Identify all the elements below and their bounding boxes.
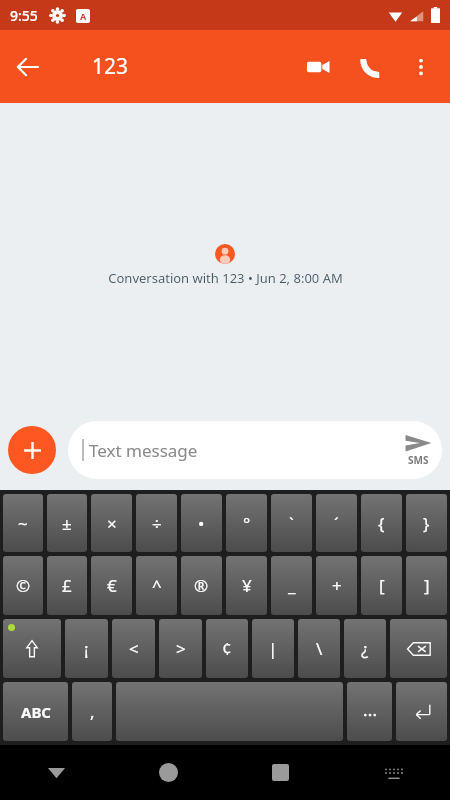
button[interactable]: ] [406, 556, 447, 615]
button[interactable]: , [72, 682, 112, 741]
staticText: ¢ [222, 637, 232, 660]
button[interactable]: Home [112, 745, 224, 800]
button[interactable]: Call [344, 41, 396, 93]
button[interactable]: Shift [3, 619, 61, 678]
button[interactable]: ¿ [344, 619, 386, 678]
button[interactable]: ^ [136, 556, 177, 615]
button[interactable]: Recents [224, 745, 337, 800]
staticText: ABC [21, 702, 51, 722]
staticText: © [16, 574, 31, 597]
staticText: ` [289, 512, 294, 535]
staticText: × [107, 512, 117, 535]
staticText: ´ [334, 512, 339, 535]
button[interactable]: _ [271, 556, 312, 615]
staticText: £ [62, 574, 72, 597]
staticText: > [176, 637, 186, 660]
staticText: • [198, 512, 205, 535]
staticText: ¥ [242, 574, 252, 597]
staticText: { [378, 512, 385, 535]
staticText: ] [424, 574, 430, 597]
button[interactable]: Enter [396, 682, 447, 741]
button[interactable]: × [91, 494, 132, 552]
button[interactable]: < [112, 619, 155, 678]
staticText: 9:55 [10, 6, 38, 25]
button[interactable]: | [252, 619, 294, 678]
staticText: < [129, 637, 139, 660]
button[interactable]: Text message [68, 421, 442, 479]
button[interactable]: Back [0, 39, 56, 95]
staticText: \ [316, 637, 323, 660]
button[interactable]: More options [396, 42, 446, 92]
staticText: [ [379, 574, 385, 597]
button[interactable]: £ [47, 556, 87, 615]
button[interactable]: ` [271, 494, 312, 552]
button[interactable]: \ [298, 619, 340, 678]
button[interactable]: ± [47, 494, 87, 552]
staticText: ¡ [84, 637, 89, 660]
button[interactable]: ° [226, 494, 267, 552]
button[interactable]: { [361, 494, 402, 552]
staticText: 123 [92, 52, 129, 81]
button[interactable]: Space [116, 682, 343, 741]
staticText: + [332, 574, 342, 597]
button[interactable]: Backspace [390, 619, 447, 678]
staticText: ~ [18, 512, 28, 535]
button[interactable]: } [406, 494, 447, 552]
staticText: } [423, 512, 430, 535]
button[interactable]: ´ [316, 494, 357, 552]
staticText: Conversation with 123 • Jun 2, 8:00 AM [108, 269, 343, 287]
staticText: Text message [89, 439, 198, 462]
button[interactable]: ÷ [136, 494, 177, 552]
staticText: , [90, 700, 95, 723]
button[interactable]: • [181, 494, 222, 552]
staticText: ÷ [152, 512, 162, 535]
staticText: ^ [152, 574, 162, 597]
staticText: ¿ [361, 637, 369, 660]
staticText: ± [62, 512, 72, 535]
staticText: € [107, 574, 117, 597]
button[interactable]: + [316, 556, 357, 615]
button[interactable]: ¡ [65, 619, 108, 678]
button[interactable]: © [3, 556, 43, 615]
staticText: | [268, 637, 278, 660]
button[interactable]: [ [361, 556, 402, 615]
button[interactable]: € [91, 556, 132, 615]
button[interactable]: ABC [3, 682, 68, 741]
staticText: A [80, 10, 87, 22]
button[interactable]: Hide keyboard [0, 745, 112, 800]
button[interactable]: > [159, 619, 202, 678]
button[interactable]: ¥ [226, 556, 267, 615]
staticText: SMS [408, 453, 429, 467]
button[interactable]: Video call [292, 41, 344, 93]
button[interactable]: ¢ [206, 619, 248, 678]
button[interactable]: ® [181, 556, 222, 615]
staticText: ° [243, 512, 251, 535]
staticText: _ [288, 574, 296, 597]
button[interactable]: ~ [3, 494, 43, 552]
button[interactable]: Attach [8, 426, 56, 474]
button[interactable]: Symbols [347, 682, 392, 741]
staticText: ® [194, 574, 209, 597]
button[interactable]: Switch keyboard [337, 745, 450, 800]
